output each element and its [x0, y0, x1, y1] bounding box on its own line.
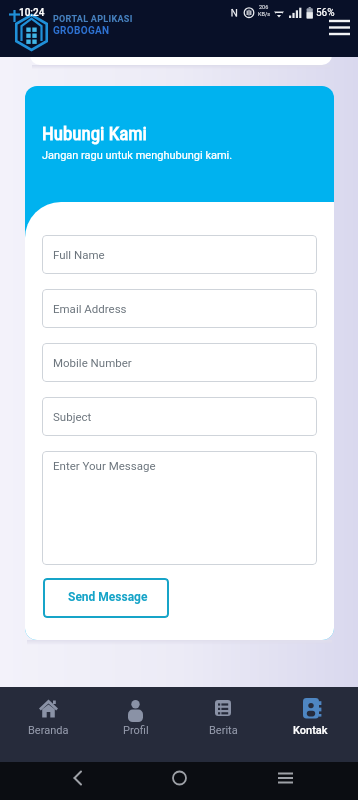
- button[interactable]: [159, 762, 199, 800]
- staticText: Hubungi Kami: [42, 122, 147, 144]
- button[interactable]: Enter Your Message: [42, 451, 317, 565]
- staticText: Subject: [53, 410, 92, 423]
- staticText: KB/s: [258, 11, 270, 17]
- staticText: Send Message: [68, 590, 148, 604]
- staticText: Enter Your Message: [53, 459, 156, 472]
- staticText: Beranda: [28, 724, 69, 737]
- button[interactable]: Kontak: [268, 690, 354, 748]
- staticText: 56%: [316, 7, 335, 19]
- staticText: PORTAL APLIKASI: [53, 14, 133, 25]
- staticText: 10:24: [19, 7, 45, 19]
- button[interactable]: Mobile Number: [42, 343, 317, 382]
- staticText: Jangan ragu untuk menghubungi kami.: [42, 149, 233, 162]
- button[interactable]: [57, 762, 97, 800]
- staticText: Berita: [209, 724, 238, 737]
- staticText: Kontak: [293, 724, 328, 737]
- button[interactable]: Email Address: [42, 289, 317, 328]
- button[interactable]: Send Message: [43, 578, 169, 618]
- button[interactable]: Berita: [180, 690, 266, 748]
- staticText: GROBOGAN: [53, 25, 110, 37]
- staticText: Full Name: [53, 248, 105, 261]
- button[interactable]: Beranda: [5, 690, 91, 748]
- button[interactable]: [263, 762, 309, 800]
- staticText: Email Address: [53, 302, 127, 315]
- staticText: Profil: [123, 724, 149, 737]
- staticText: 206: [259, 4, 269, 10]
- button[interactable]: Full Name: [42, 235, 317, 274]
- button[interactable]: Subject: [42, 397, 317, 436]
- button[interactable]: [322, 13, 354, 43]
- button[interactable]: Profil: [92, 690, 178, 748]
- staticText: Mobile Number: [53, 356, 132, 369]
